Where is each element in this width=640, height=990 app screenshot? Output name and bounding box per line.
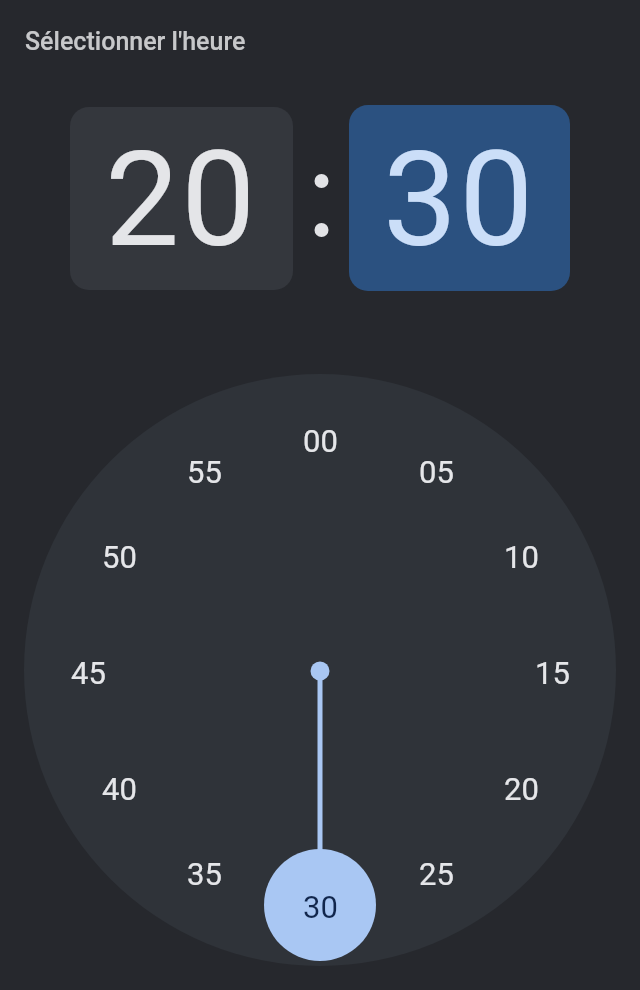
staticText: 10 — [504, 539, 539, 575]
button[interactable]: 40 — [84, 764, 154, 814]
button[interactable]: 30 — [349, 105, 570, 291]
button[interactable]: 45 — [53, 648, 123, 698]
button[interactable]: 00 — [285, 416, 355, 466]
button[interactable]: 15 — [517, 648, 587, 698]
staticText: 35 — [187, 856, 222, 892]
button[interactable]: 30 — [264, 849, 376, 961]
staticText: 50 — [102, 539, 137, 575]
staticText: 00 — [303, 423, 338, 459]
button[interactable]: 25 — [401, 849, 471, 899]
button[interactable]: 50 — [84, 532, 154, 582]
button[interactable]: 55 — [169, 447, 239, 497]
button[interactable]: 10 — [486, 532, 556, 582]
staticText: 20 — [105, 123, 258, 278]
button[interactable]: 20 — [486, 764, 556, 814]
staticText: 55 — [187, 454, 222, 490]
button[interactable]: 35 — [169, 849, 239, 899]
staticText: 25 — [419, 856, 454, 892]
staticText: 40 — [102, 771, 137, 807]
staticText: 05 — [419, 454, 454, 490]
staticText: 30 — [383, 123, 536, 278]
staticText: 15 — [535, 655, 570, 691]
staticText: 30 — [303, 889, 338, 925]
button[interactable]: 05 — [401, 447, 471, 497]
staticText: 20 — [504, 771, 539, 807]
staticText: 45 — [71, 655, 106, 691]
button[interactable]: 20 — [70, 107, 293, 290]
staticText: Sélectionner l'heure — [25, 27, 246, 56]
